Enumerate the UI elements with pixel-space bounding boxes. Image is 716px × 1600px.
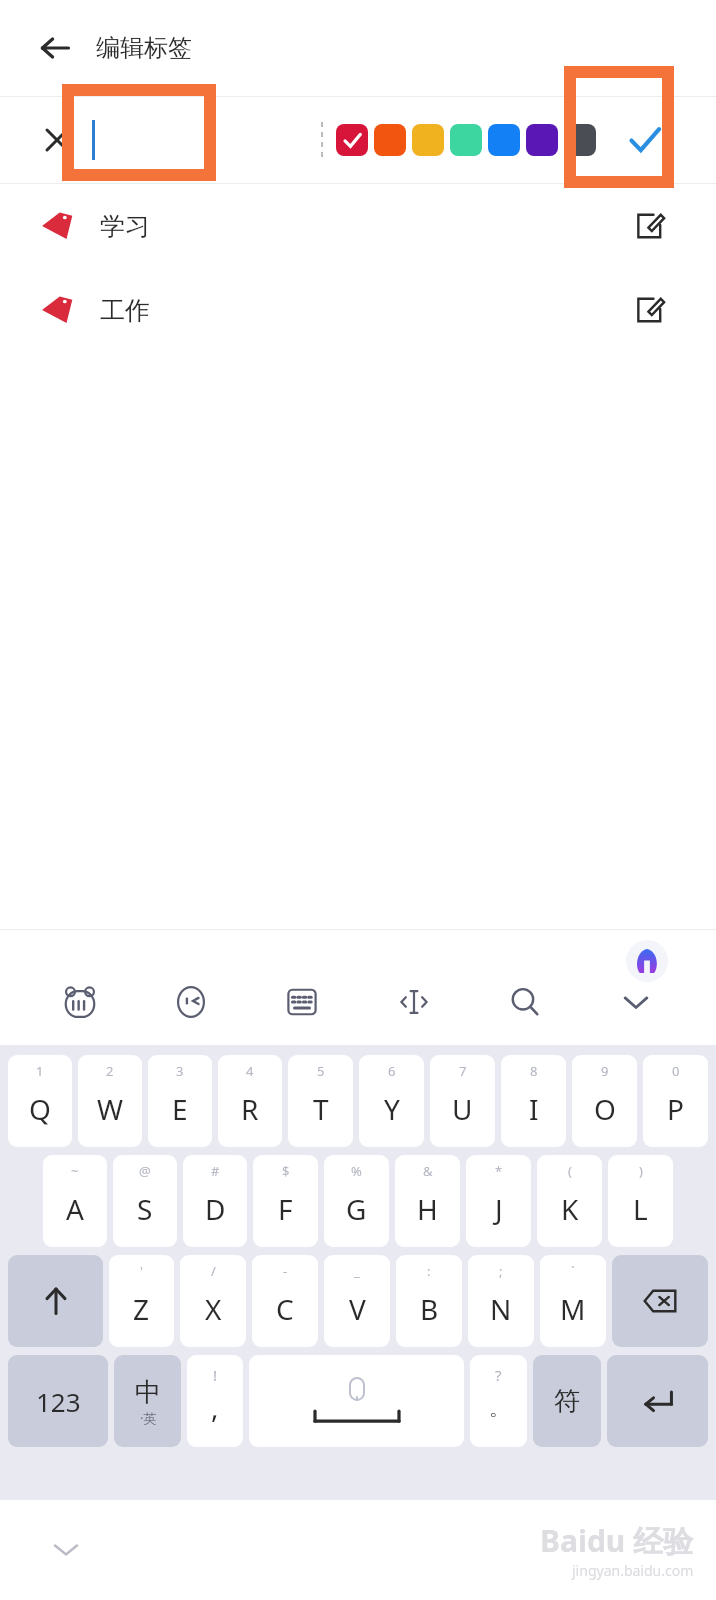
button[interactable]: Color 0 xyxy=(336,124,368,156)
staticText: @ xyxy=(139,1162,151,1180)
staticText: % xyxy=(351,1162,362,1180)
button[interactable]: 9 xyxy=(572,1055,637,1147)
button[interactable]: 5 xyxy=(288,1055,353,1147)
staticText: # xyxy=(211,1162,220,1180)
staticText: G xyxy=(346,1190,367,1228)
staticText: ! xyxy=(213,1365,218,1385)
button[interactable]: Shift xyxy=(8,1255,103,1347)
staticText: X xyxy=(205,1290,222,1328)
button[interactable]: ( xyxy=(537,1155,602,1247)
button[interactable]: Backspace xyxy=(612,1255,708,1347)
button[interactable]: ) xyxy=(608,1155,673,1247)
button[interactable]: % xyxy=(324,1155,389,1247)
button[interactable]: 0 xyxy=(643,1055,708,1147)
button[interactable]: 4 xyxy=(218,1055,282,1147)
button[interactable]: 7 xyxy=(430,1055,495,1147)
staticText: T xyxy=(313,1090,329,1128)
staticText: Q xyxy=(29,1090,51,1128)
staticText: ( xyxy=(568,1162,572,1180)
button[interactable]: Color 4 xyxy=(488,124,520,156)
staticText: $ xyxy=(282,1162,290,1180)
button[interactable]: Emoji xyxy=(160,971,222,1033)
button[interactable]: ' xyxy=(109,1255,174,1347)
button[interactable]: Search xyxy=(494,971,556,1033)
staticText: Z xyxy=(133,1290,150,1328)
button[interactable]: Color 5 xyxy=(526,124,558,156)
button[interactable]: Clear xyxy=(34,117,80,163)
button[interactable]: 3 xyxy=(148,1055,212,1147)
button[interactable]: 工作 xyxy=(0,268,716,352)
button[interactable]: $ xyxy=(253,1155,318,1247)
button[interactable]: Confirm xyxy=(618,113,672,167)
button[interactable]: 1 xyxy=(8,1055,72,1147)
button[interactable]: 学习 xyxy=(0,184,716,268)
button[interactable]: Color 3 xyxy=(450,124,482,156)
button[interactable]: Back xyxy=(26,19,84,77)
button[interactable]: Assistant xyxy=(626,940,668,982)
staticText: ` xyxy=(571,1262,575,1280)
button[interactable]: & xyxy=(395,1155,460,1247)
staticText: ·英 xyxy=(140,1409,157,1427)
button[interactable]: 8 xyxy=(501,1055,566,1147)
staticText: Y xyxy=(384,1090,400,1128)
button[interactable]: ; xyxy=(468,1255,534,1347)
button[interactable]: Enter xyxy=(607,1355,708,1447)
staticText: P xyxy=(667,1090,684,1128)
staticText: L xyxy=(633,1190,648,1228)
button[interactable]: Hide keyboard xyxy=(605,971,667,1033)
staticText: 2 xyxy=(106,1062,114,1080)
staticText: C xyxy=(276,1290,294,1328)
button[interactable]: ! xyxy=(187,1355,243,1447)
button[interactable]: Baidu input xyxy=(49,971,111,1033)
button[interactable]: _ xyxy=(324,1255,390,1347)
staticText: S xyxy=(137,1190,153,1228)
button[interactable]: 123 xyxy=(8,1355,108,1447)
button[interactable]: # xyxy=(183,1155,247,1247)
button[interactable]: Space xyxy=(249,1355,464,1447)
staticText: E xyxy=(172,1090,188,1128)
button[interactable]: : xyxy=(396,1255,462,1347)
button[interactable]: * xyxy=(466,1155,531,1247)
staticText: ' xyxy=(140,1262,143,1280)
button[interactable]: 中 xyxy=(114,1355,181,1447)
staticText: 。 xyxy=(489,1396,509,1421)
button[interactable]: ? xyxy=(470,1355,527,1447)
button[interactable]: ` xyxy=(540,1255,606,1347)
button[interactable]: 6 xyxy=(359,1055,424,1147)
staticText: Baidu 经验 xyxy=(540,1520,694,1561)
staticText: B xyxy=(420,1290,439,1328)
button[interactable]: / xyxy=(180,1255,246,1347)
staticText: 123 xyxy=(36,1384,81,1419)
staticText: 工作 xyxy=(100,295,150,326)
button[interactable]: 符 xyxy=(533,1355,601,1447)
staticText: 0 xyxy=(672,1062,680,1080)
staticText: 9 xyxy=(601,1062,609,1080)
staticText: J xyxy=(495,1190,503,1228)
button[interactable]: 2 xyxy=(78,1055,142,1147)
button[interactable]: Move cursor xyxy=(383,971,445,1033)
staticText: O xyxy=(594,1090,616,1128)
staticText: F xyxy=(278,1190,293,1228)
button[interactable]: - xyxy=(252,1255,318,1347)
button[interactable]: Color 1 xyxy=(374,124,406,156)
staticText: 5 xyxy=(317,1062,325,1080)
button[interactable]: Color 6 xyxy=(564,124,596,156)
staticText: & xyxy=(423,1162,433,1180)
staticText: 4 xyxy=(246,1062,254,1080)
button[interactable]: @ xyxy=(113,1155,177,1247)
button[interactable]: Edit 学习 xyxy=(624,201,674,251)
staticText: W xyxy=(97,1090,124,1128)
button[interactable]: Edit 工作 xyxy=(624,285,674,335)
staticText: 3 xyxy=(176,1062,184,1080)
staticText: , xyxy=(211,1388,219,1426)
staticText: 6 xyxy=(388,1062,396,1080)
button[interactable]: Color 2 xyxy=(412,124,444,156)
staticText: V xyxy=(349,1290,366,1328)
staticText: * xyxy=(495,1162,503,1180)
staticText: 8 xyxy=(530,1062,538,1080)
button[interactable]: Collapse xyxy=(46,1530,86,1570)
button[interactable]: ~ xyxy=(43,1155,107,1247)
button[interactable]: Keyboard layout xyxy=(271,971,333,1033)
staticText: U xyxy=(452,1090,473,1128)
staticText: 中 xyxy=(135,1376,161,1409)
